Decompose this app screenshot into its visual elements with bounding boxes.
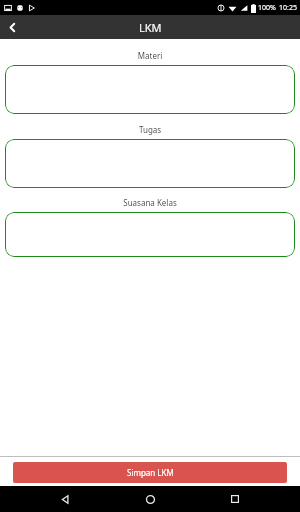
button[interactable]: [5, 212, 295, 257]
button[interactable]: [5, 139, 295, 188]
button[interactable]: [5, 65, 295, 114]
button[interactable]: Back: [0, 15, 24, 39]
staticText: 10:25: [279, 3, 297, 13]
staticText: Suasana Kelas: [0, 197, 300, 208]
button[interactable]: Home: [130, 486, 170, 512]
staticText: Simpan LKM: [127, 467, 174, 478]
staticText: LKM: [139, 20, 162, 35]
staticText: 100%: [258, 3, 276, 13]
button[interactable]: Back: [45, 486, 85, 512]
staticText: Materi: [0, 50, 300, 61]
staticText: Tugas: [0, 124, 300, 135]
button[interactable]: Recent apps: [215, 486, 255, 512]
button[interactable]: Simpan LKM: [13, 462, 287, 483]
